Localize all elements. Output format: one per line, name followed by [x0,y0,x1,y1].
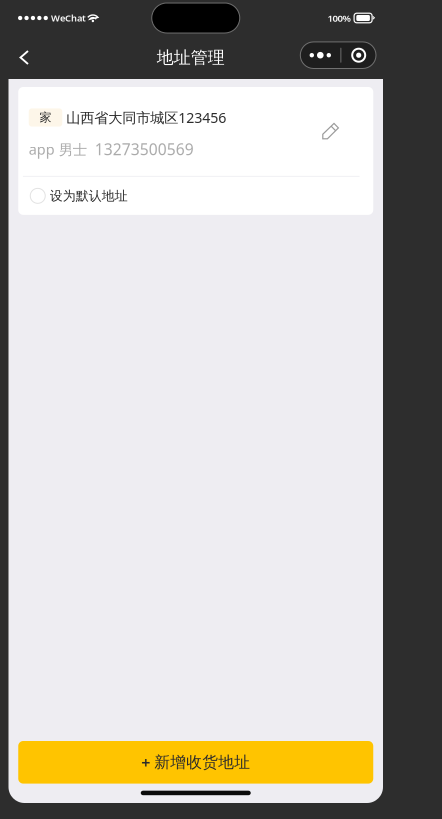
staticText: 山西省大同市城区123456 [66,108,226,127]
button[interactable]: 设为默认地址 [18,177,373,215]
button[interactable]: + [18,741,373,784]
staticText: 100% [327,11,350,25]
staticText: 家 [39,110,51,125]
staticText: + [141,751,150,773]
staticText: 地址管理 [157,47,225,68]
button[interactable]: More options [300,44,376,71]
staticText: 13273500569 [95,139,194,160]
staticText: app 男士 [29,139,87,159]
button[interactable]: Back [7,38,41,76]
button[interactable]: Edit address [312,112,350,156]
staticText: WeChat [51,12,86,24]
staticText: 新增收货地址 [154,752,250,772]
staticText: 设为默认地址 [50,188,128,204]
